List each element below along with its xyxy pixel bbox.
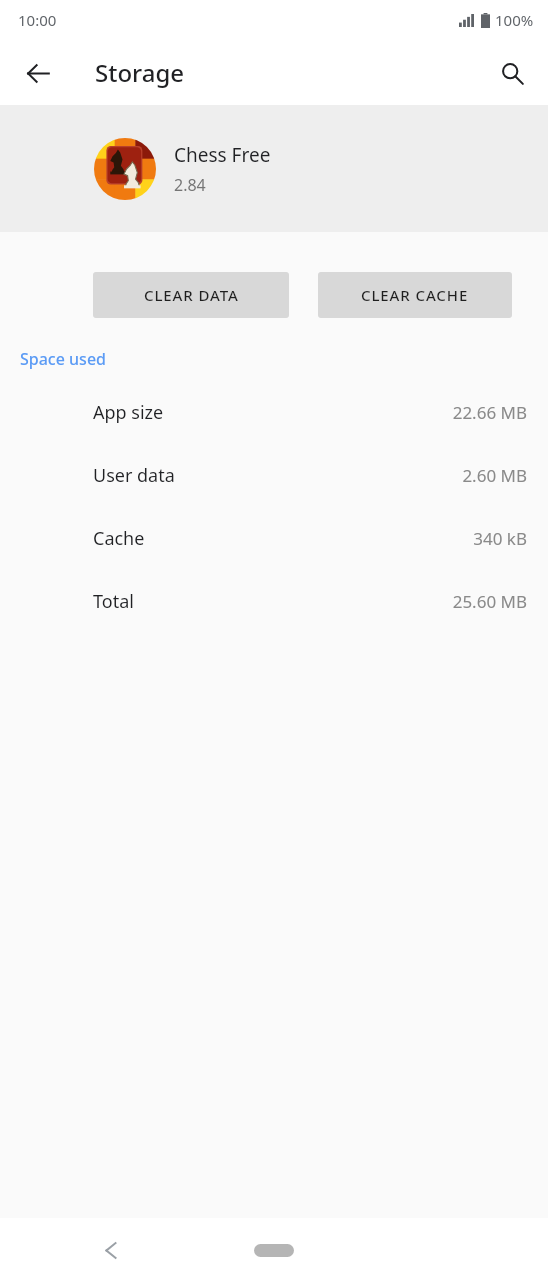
staticText: 2.84 (174, 174, 206, 196)
staticText: 22.66 MB (452, 401, 527, 424)
staticText: Total (93, 589, 134, 614)
button[interactable]: Chess Free (0, 105, 548, 232)
button[interactable]: Total (0, 570, 548, 633)
staticText: Cache (93, 526, 145, 551)
staticText: 10:00 (18, 10, 57, 30)
staticText: Space used (20, 348, 106, 370)
staticText: App size (93, 400, 164, 425)
button[interactable]: Cache (0, 507, 548, 570)
staticText: 2.60 MB (462, 464, 527, 487)
staticText: CLEAR CACHE (361, 285, 469, 305)
button[interactable]: Back (14, 49, 62, 97)
staticText: User data (93, 463, 175, 488)
button[interactable]: Search (488, 49, 536, 97)
staticText: 25.60 MB (452, 590, 527, 613)
staticText: 340 kB (473, 527, 527, 550)
button[interactable]: Home (254, 1244, 294, 1257)
button[interactable]: CLEAR DATA (93, 272, 289, 318)
staticText: Storage (95, 56, 185, 89)
button[interactable]: App size (0, 381, 548, 444)
staticText: CLEAR DATA (144, 285, 239, 305)
staticText: 100% (495, 10, 534, 30)
button[interactable]: Back (88, 1227, 134, 1273)
staticText: Chess Free (174, 142, 271, 168)
button[interactable]: CLEAR CACHE (318, 272, 512, 318)
button[interactable]: User data (0, 444, 548, 507)
